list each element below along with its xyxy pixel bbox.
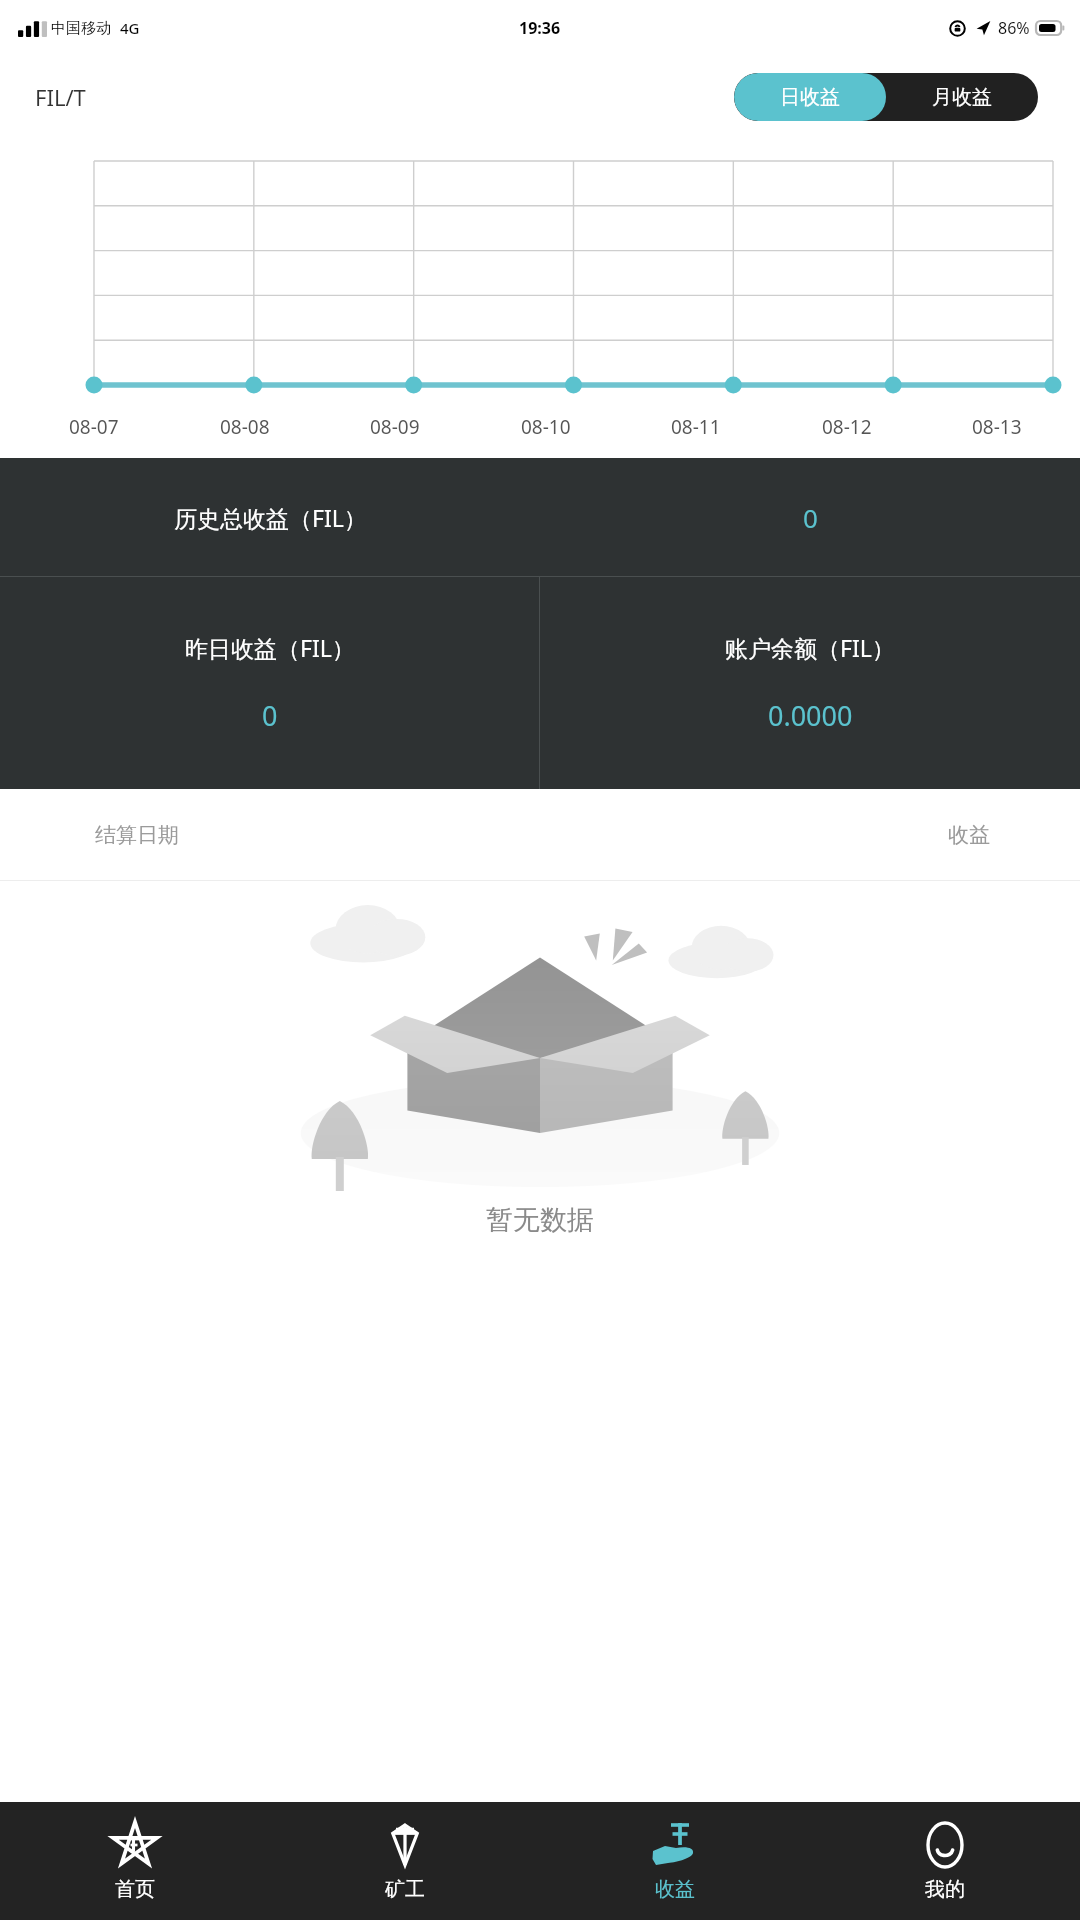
staticText: 0.0000 <box>768 697 853 734</box>
staticText: 日收益 <box>780 85 840 110</box>
staticText: 账户余额（FIL） <box>725 632 895 663</box>
staticText: 月收益 <box>932 85 992 110</box>
button[interactable]: 日收益 <box>734 73 886 121</box>
other: 收益 <box>650 1820 700 1870</box>
staticText: 收益 <box>948 822 990 848</box>
staticText: 收益 <box>655 1877 695 1902</box>
button[interactable]: 昨日收益（FIL） <box>0 577 539 789</box>
staticText: 4G <box>120 18 140 38</box>
staticText: 首页 <box>115 1877 155 1902</box>
button[interactable]: 收益 <box>540 1802 810 1920</box>
staticText: 历史总收益（FIL） <box>174 502 367 533</box>
button[interactable]: 月收益 <box>886 73 1038 121</box>
staticText: 08-11 <box>671 414 721 440</box>
button[interactable]: 首页 <box>0 1802 270 1920</box>
staticText: 08-08 <box>220 414 270 440</box>
button[interactable]: 矿工 <box>270 1802 540 1920</box>
staticText: 矿工 <box>385 1877 425 1902</box>
button[interactable]: 我的 <box>810 1802 1080 1920</box>
button[interactable]: 历史总收益（FIL） <box>0 458 1080 576</box>
staticText: 0 <box>803 500 818 535</box>
staticText: 86% <box>998 17 1030 39</box>
staticText: 昨日收益（FIL） <box>185 632 355 663</box>
button[interactable]: 账户余额（FIL） <box>540 577 1080 789</box>
staticText: 08-09 <box>370 414 420 440</box>
staticText: 暂无数据 <box>486 1203 594 1237</box>
staticText: 结算日期 <box>95 822 179 848</box>
staticText: 08-13 <box>972 414 1022 440</box>
staticText: 中国移动 <box>51 19 111 38</box>
staticText: 08-12 <box>822 414 872 440</box>
staticText: 08-07 <box>69 414 119 440</box>
staticText: 我的 <box>925 1877 965 1902</box>
staticText: 0 <box>262 697 278 734</box>
staticText: FIL/T <box>35 82 86 112</box>
staticText: 08-10 <box>521 414 571 440</box>
staticText: 19:36 <box>519 17 561 39</box>
